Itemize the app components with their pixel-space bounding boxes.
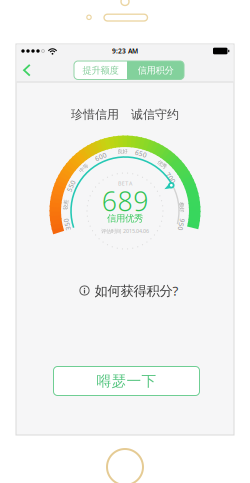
button[interactable]: 提升额度 <box>0 0 250 483</box>
staticText: 较差 <box>61 201 71 208</box>
staticText: 优秀 <box>157 161 167 168</box>
button[interactable]: 信用积分 <box>0 0 250 483</box>
staticText: 信用优秀 <box>107 213 143 224</box>
staticText: 评估时间 2015.04.06 <box>101 227 149 235</box>
staticText: BETA <box>118 180 132 187</box>
button[interactable] <box>0 0 250 483</box>
staticText: 中等 <box>79 165 89 171</box>
staticText: 700 <box>165 173 177 182</box>
staticText: 极好 <box>177 204 187 210</box>
staticText: 珍惜信用 诚信守约 <box>71 107 179 122</box>
staticText: 950 <box>175 220 187 229</box>
staticText: 550 <box>65 181 77 190</box>
staticText: 良好 <box>117 148 127 155</box>
staticText: 600 <box>95 152 107 161</box>
staticText: 689 <box>102 183 148 219</box>
staticText: 如何获得积分? <box>94 282 178 299</box>
staticText: 信用积分 <box>137 65 173 76</box>
button[interactable] <box>0 0 250 483</box>
staticText: 650 <box>135 149 147 158</box>
button[interactable]: 嘚瑟一下 <box>53 366 200 396</box>
staticText: 嘚瑟一下 <box>96 372 156 390</box>
button[interactable]: 如何获得积分? <box>79 282 178 299</box>
staticText: 9:23 AM <box>112 47 138 55</box>
staticText: 提升额度 <box>82 65 118 76</box>
staticText: 350 <box>61 220 73 229</box>
